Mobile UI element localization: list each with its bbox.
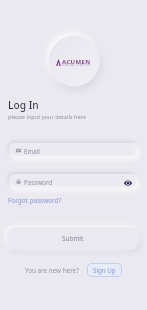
staticText: DIGITAL STAFFER [62, 63, 91, 67]
button[interactable]: Email [9, 143, 138, 158]
staticText: Password [24, 178, 52, 186]
staticText: Forgot password? [8, 196, 62, 205]
staticText: please input your details here [8, 113, 86, 121]
button[interactable]: Forgot password? [7, 195, 63, 206]
staticText: ACUMEN [62, 58, 91, 66]
button[interactable]: Show password [122, 176, 133, 187]
button[interactable]: Sign Up [87, 263, 122, 277]
staticText: Log In [8, 98, 39, 112]
button[interactable]: Password [9, 174, 138, 189]
staticText: You are new here? [25, 266, 79, 275]
staticText: Email [24, 147, 40, 155]
button[interactable]: Submit [7, 227, 139, 250]
staticText: Submit [62, 234, 84, 243]
staticText: Sign Up [93, 266, 116, 274]
